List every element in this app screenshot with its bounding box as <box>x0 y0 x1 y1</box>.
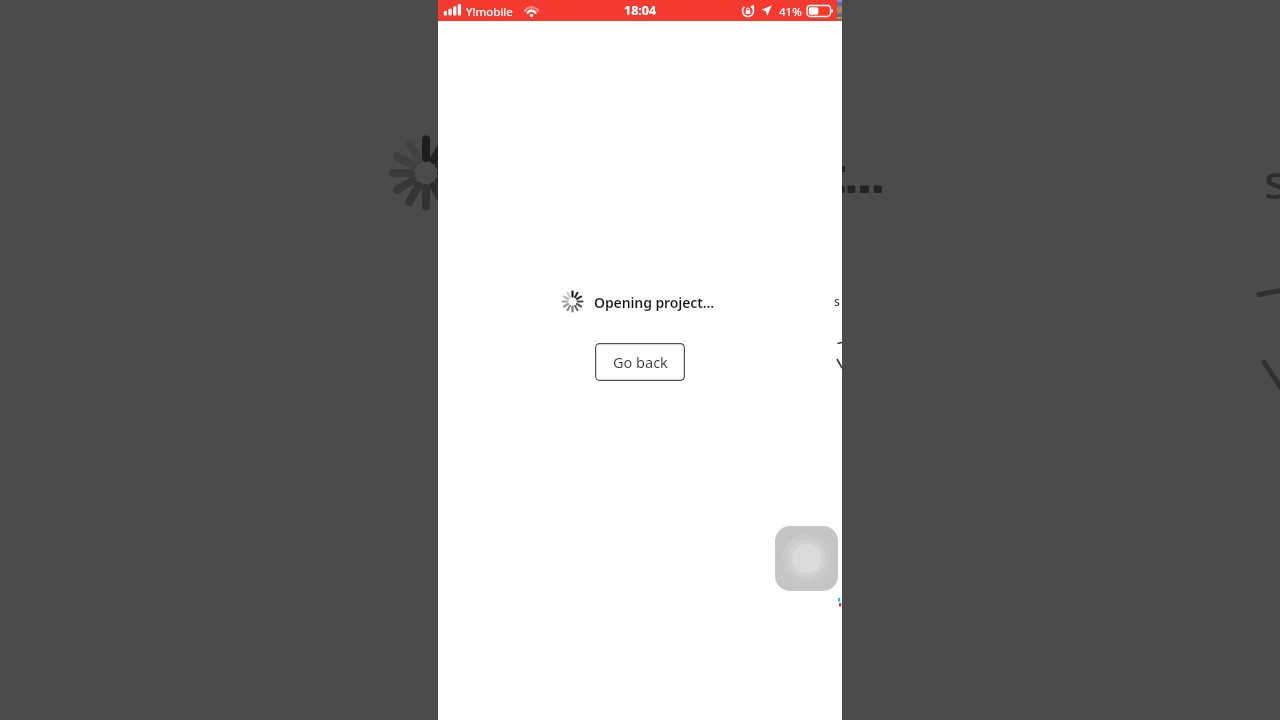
button[interactable] <box>775 526 838 591</box>
staticText: Go back <box>613 352 668 372</box>
staticText: Y!mobile <box>466 4 513 20</box>
button[interactable]: Go back <box>595 343 685 381</box>
staticText: 41% <box>779 4 802 20</box>
staticText: 18:04 <box>624 2 657 19</box>
staticText: Opening project... <box>594 293 715 312</box>
staticText: s <box>834 293 840 309</box>
staticText: s <box>1264 148 1280 213</box>
